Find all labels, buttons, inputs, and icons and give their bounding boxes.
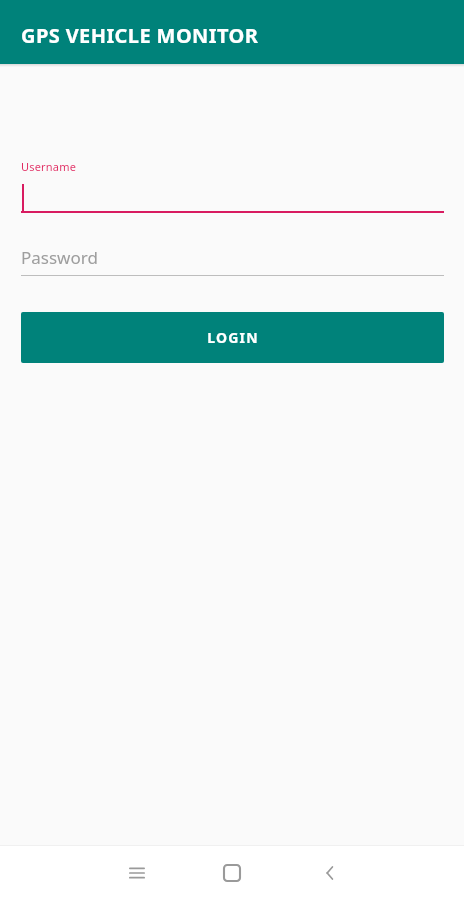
staticText: GPS VEHICLE MONITOR	[21, 22, 259, 49]
button[interactable]: Username	[21, 159, 444, 213]
button[interactable]: Home	[208, 849, 256, 897]
button[interactable]: Password	[21, 243, 444, 276]
staticText: Username	[21, 159, 77, 174]
staticText: Password	[21, 246, 98, 269]
button[interactable]: Recent apps	[113, 849, 161, 897]
button[interactable]: Back	[306, 849, 354, 897]
staticText: LOGIN	[207, 328, 259, 347]
button[interactable]: LOGIN	[21, 312, 444, 363]
